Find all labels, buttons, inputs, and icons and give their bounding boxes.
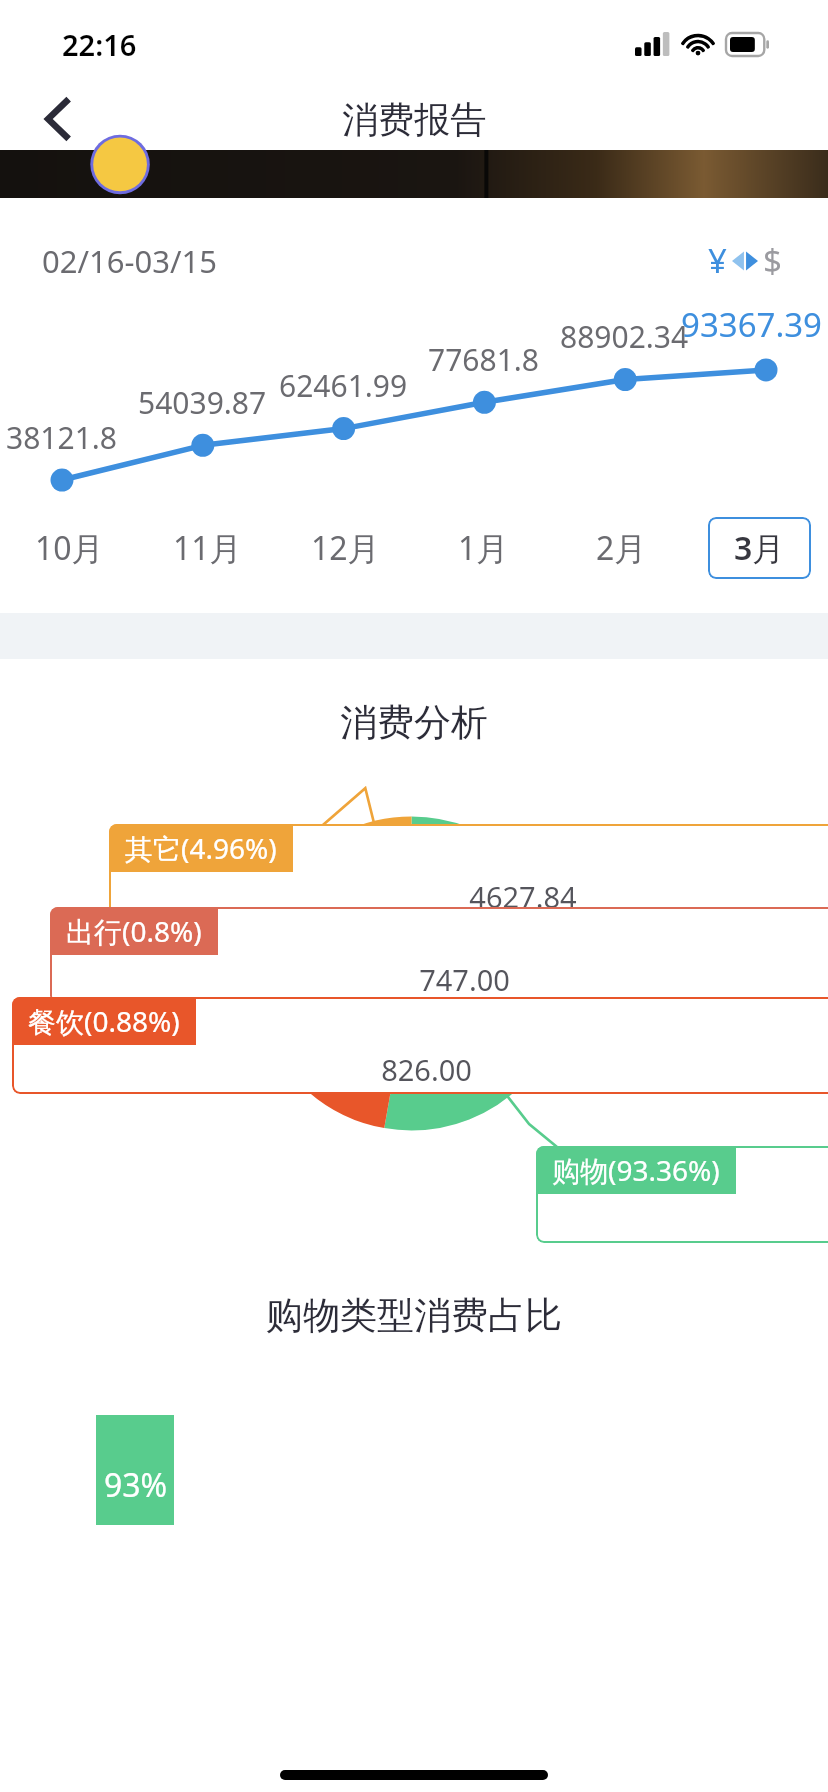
button[interactable]: 1月 [414,526,552,570]
button[interactable]: 12月 [276,526,414,570]
button[interactable]: Switch currency [704,234,786,287]
button[interactable]: 10月 [0,526,138,570]
button[interactable]: 出行(0.8%) [50,907,828,1004]
staticText: 其它(4.96%) [125,829,277,867]
staticText: 62461.99 [279,365,408,406]
staticText: 747.00 [419,960,510,999]
staticText: 93367.39 [681,302,822,347]
staticText: 54039.87 [138,382,267,423]
staticText: 购物(93.36%) [552,1151,720,1189]
staticText: 88902.34 [560,316,689,357]
staticText: 12月 [311,526,380,570]
button[interactable]: 2月 [552,526,690,570]
staticText: 餐饮(0.88%) [28,1002,180,1040]
button[interactable]: 11月 [138,526,276,570]
staticText: 消费报告 [342,97,486,142]
button[interactable]: Back [26,88,90,150]
staticText: 826.00 [381,1050,472,1089]
button[interactable]: 3月 [690,517,828,579]
button[interactable]: 购物(93.36%) [536,1146,828,1243]
staticText: 10月 [35,526,104,570]
staticText: 4627.84 [469,877,577,916]
staticText: 2月 [596,526,647,570]
staticText: 购物类型消费占比 [266,1292,562,1339]
staticText: 93% [104,1463,168,1507]
button[interactable]: 其它(4.96%) [109,824,828,921]
staticText: 1月 [458,526,509,570]
button[interactable]: 93% [96,1415,174,1525]
staticText: 22:16 [62,25,137,64]
staticText: 出行(0.8%) [66,912,202,950]
staticText: $ [763,238,782,283]
staticText: 02/16-03/15 [42,240,217,282]
staticText: 38121.8 [6,417,117,458]
staticText: ¥ [708,238,727,283]
staticText: 消费分析 [340,699,488,746]
staticText: 11月 [173,526,242,570]
staticText: 3月 [734,526,785,570]
staticText: 77681.8 [428,339,539,380]
button[interactable]: 餐饮(0.88%) [12,997,828,1094]
